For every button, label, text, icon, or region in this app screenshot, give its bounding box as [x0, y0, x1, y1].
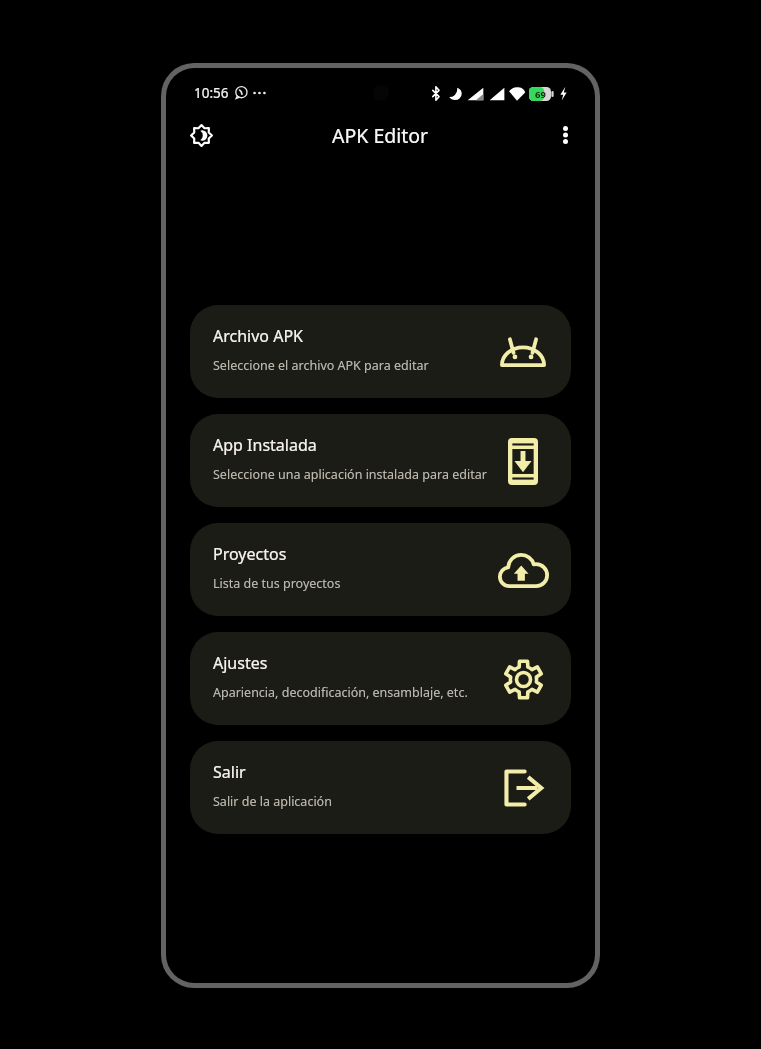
button[interactable]: Proyectos	[190, 523, 571, 616]
staticText: APK Editor	[332, 122, 429, 149]
staticText: Salir de la aplicación	[213, 793, 332, 810]
staticText: Archivo APK	[213, 325, 303, 347]
button[interactable]: Archivo APK	[190, 305, 571, 398]
button[interactable]: Toggle dark mode	[181, 118, 221, 152]
staticText: Seleccione una aplicación instalada para…	[213, 466, 487, 483]
button[interactable]: Salir	[190, 741, 571, 834]
staticText: App Instalada	[213, 434, 317, 456]
staticText: Seleccione el archivo APK para editar	[213, 357, 429, 374]
staticText: Proyectos	[213, 543, 287, 565]
staticText: Apariencia, decodificación, ensamblaje, …	[213, 684, 468, 701]
button[interactable]: More options	[545, 118, 585, 152]
staticText: Ajustes	[213, 652, 268, 674]
staticText: Salir	[213, 761, 246, 783]
staticText: Lista de tus proyectos	[213, 575, 341, 592]
button[interactable]: App Instalada	[190, 414, 571, 507]
staticText: 69	[535, 88, 546, 101]
staticText: 10:56	[194, 84, 229, 102]
button[interactable]: Ajustes	[190, 632, 571, 725]
